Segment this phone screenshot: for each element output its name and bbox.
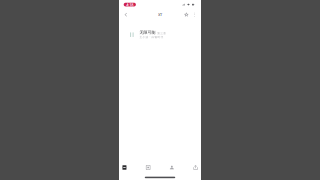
button[interactable]: Favorite [183, 9, 190, 20]
button[interactable]: Back [121, 9, 130, 20]
button[interactable]: More options [192, 9, 197, 20]
staticText: 无限可能 [140, 30, 156, 35]
button[interactable]: 无限可能 [119, 26, 201, 42]
staticText: 第三章 [157, 32, 166, 35]
button[interactable]: Browse [144, 164, 152, 170]
staticText: 王小波 · 白银时代 [140, 35, 164, 39]
staticText: 4:18 [126, 2, 133, 7]
button[interactable]: More [192, 164, 200, 170]
staticText: XT [158, 12, 162, 17]
button[interactable]: Profile [168, 164, 176, 170]
button[interactable]: Library [120, 164, 128, 170]
